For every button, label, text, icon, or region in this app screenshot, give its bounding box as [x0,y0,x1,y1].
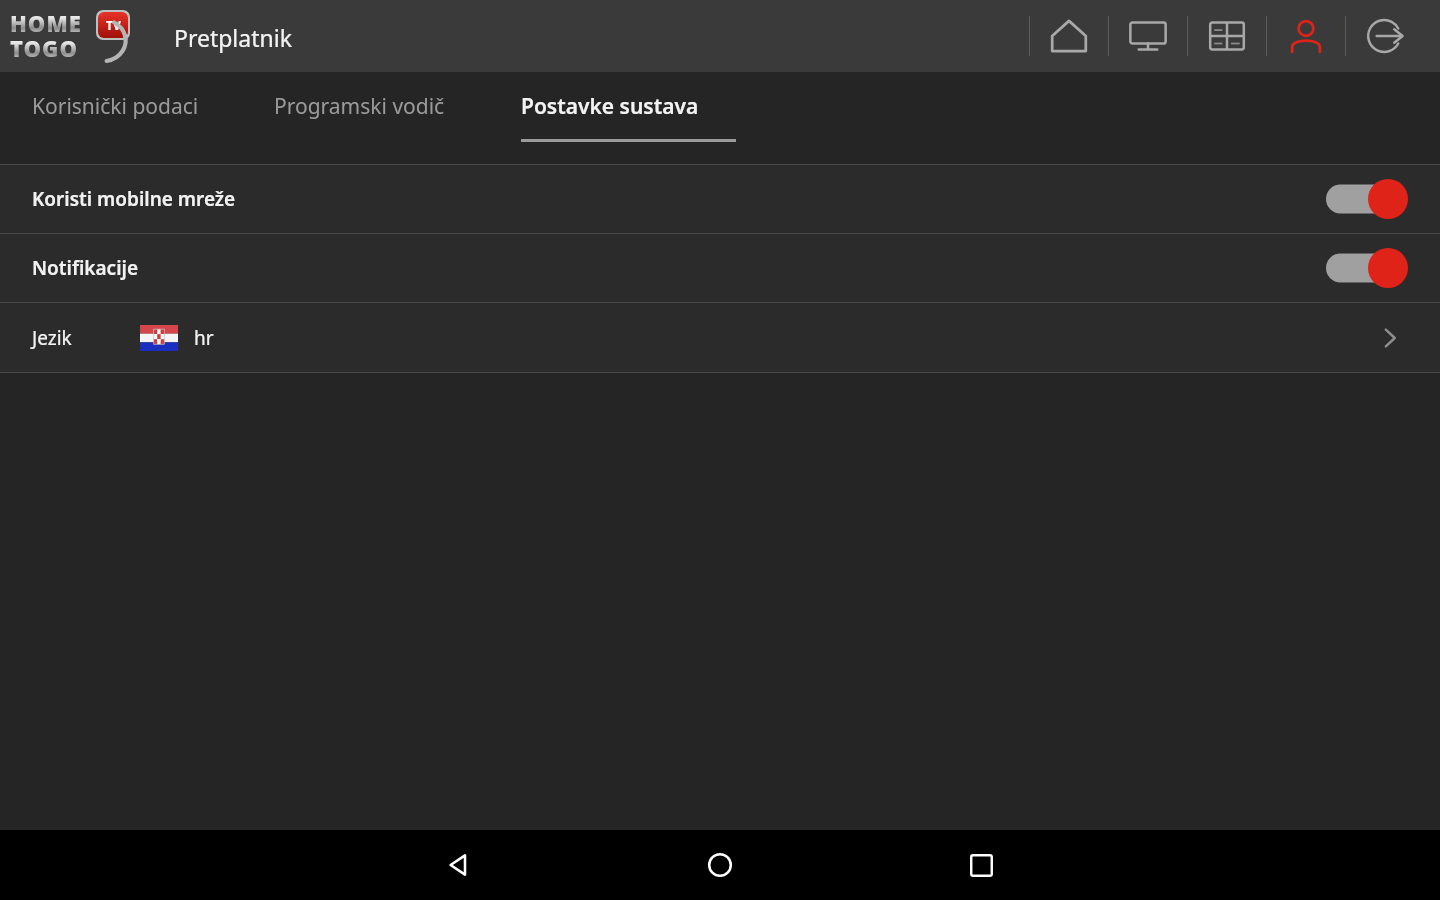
button[interactable]: Home [1030,0,1108,72]
staticText: Pretplatnik [174,22,292,53]
button[interactable]: TV [1109,0,1187,72]
button[interactable]: Log out [1346,0,1424,72]
button[interactable]: Jezik [0,303,1440,372]
staticText: HOME [10,8,88,38]
button[interactable]: Notifikacije [0,234,1440,302]
button[interactable]: Koristi mobilne mreže [0,165,1440,233]
staticText: Koristi mobilne mreže [32,186,236,212]
button[interactable]: Toggle on [1326,179,1408,219]
staticText: Jezik [32,325,72,351]
button[interactable]: Back [420,830,498,900]
button[interactable]: Postavke sustava [521,72,736,164]
button[interactable]: Toggle on [1326,248,1408,288]
staticText: Notifikacije [32,255,139,281]
staticText: Korisnički podaci [32,92,199,121]
staticText: Postavke sustava [521,92,699,121]
staticText: hr [194,325,214,351]
button[interactable]: Program guide [1188,0,1266,72]
button[interactable]: Korisnički podaci [32,72,238,164]
button[interactable]: Home To Go TV [10,8,152,62]
staticText: TOGO [10,33,102,63]
button[interactable]: Home [681,830,759,900]
button[interactable]: Programski vodič [274,72,487,164]
other: Open language list [1372,320,1408,356]
staticText: Programski vodič [274,92,445,121]
button[interactable]: Recent apps [942,830,1020,900]
button[interactable]: Account [1267,0,1345,72]
staticText: TV [106,17,121,33]
